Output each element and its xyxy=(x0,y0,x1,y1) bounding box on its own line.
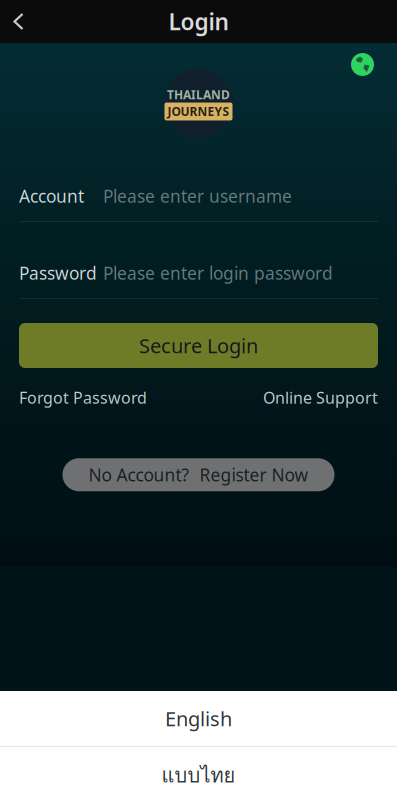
staticText: Please enter login password xyxy=(103,261,333,284)
staticText: Account xyxy=(19,184,84,207)
button[interactable]: Back xyxy=(0,0,48,43)
button[interactable]: No Account? Register Now xyxy=(62,458,334,491)
staticText: THAILAND xyxy=(167,87,230,102)
staticText: Login xyxy=(168,6,228,36)
staticText: Online Support xyxy=(263,387,378,408)
staticText: Please enter username xyxy=(103,184,292,207)
staticText: Password xyxy=(19,261,97,284)
staticText: Secure Login xyxy=(139,332,258,359)
staticText: No Account? Register Now xyxy=(88,463,308,486)
button[interactable]: Online Support xyxy=(263,387,378,408)
staticText: JOURNEYS xyxy=(167,103,229,119)
button[interactable]: English xyxy=(0,691,397,746)
staticText: English xyxy=(165,705,232,732)
button[interactable]: Forgot Password xyxy=(19,387,147,408)
staticText: แบบไทย xyxy=(161,760,235,791)
staticText: Forgot Password xyxy=(19,387,147,408)
button[interactable]: Secure Login xyxy=(19,323,378,368)
button[interactable]: แบบไทย xyxy=(0,747,397,804)
button[interactable]: Language xyxy=(344,46,381,83)
